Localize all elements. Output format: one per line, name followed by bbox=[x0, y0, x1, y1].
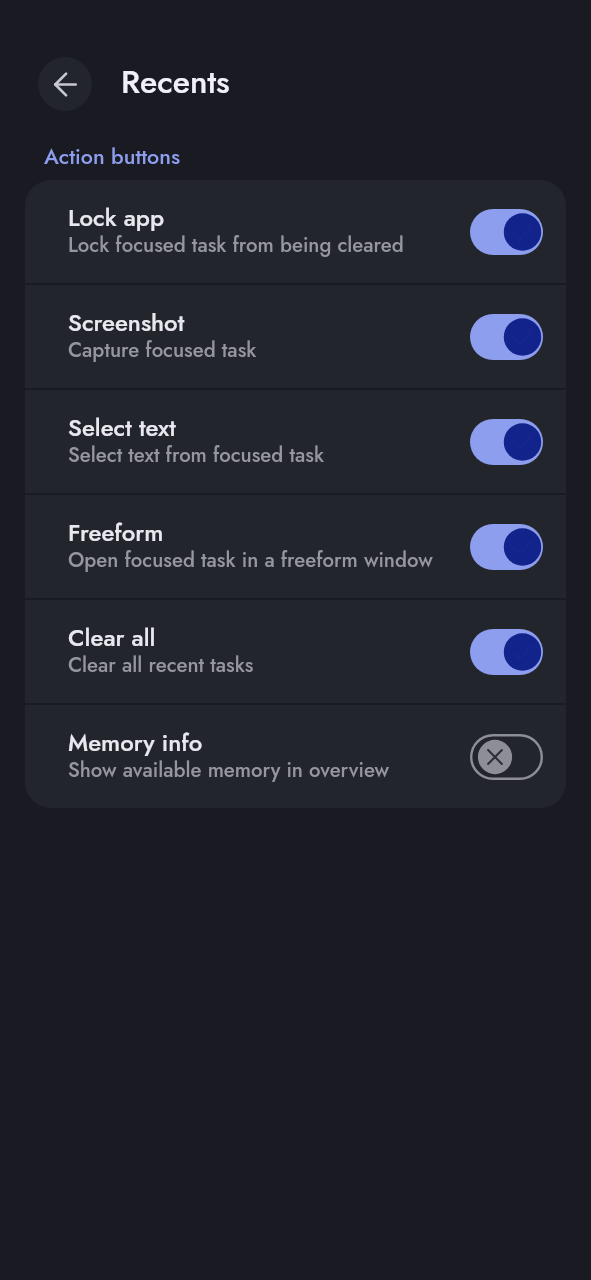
staticText: Clear all bbox=[68, 620, 156, 655]
staticText: Screenshot bbox=[68, 305, 185, 340]
staticText: Lock app bbox=[68, 200, 165, 235]
button[interactable]: Freeform bbox=[25, 495, 566, 598]
button[interactable]: Clear all bbox=[25, 600, 566, 703]
staticText: Action buttons bbox=[44, 141, 181, 172]
button[interactable]: Enabled toggle bbox=[470, 314, 543, 360]
button[interactable]: Disabled toggle bbox=[470, 734, 543, 780]
staticText: Memory info bbox=[68, 725, 203, 760]
button[interactable]: Enabled toggle bbox=[470, 524, 543, 570]
button[interactable]: Screenshot bbox=[25, 285, 566, 388]
staticText: Open focused task in a freeform window bbox=[68, 545, 433, 574]
button[interactable]: Memory info bbox=[25, 705, 566, 808]
staticText: Clear all recent tasks bbox=[68, 650, 254, 679]
staticText: Select text bbox=[68, 410, 176, 445]
staticText: Select text from focused task bbox=[68, 440, 325, 469]
staticText: Show available memory in overview bbox=[68, 755, 390, 784]
button[interactable]: Lock app bbox=[25, 180, 566, 283]
button[interactable]: Enabled toggle bbox=[470, 209, 543, 255]
button[interactable]: Select text bbox=[25, 390, 566, 493]
button[interactable]: Enabled toggle bbox=[470, 419, 543, 465]
button[interactable]: Enabled toggle bbox=[470, 629, 543, 675]
button[interactable]: Back bbox=[38, 57, 92, 111]
staticText: Freeform bbox=[68, 515, 164, 550]
staticText: Recents bbox=[121, 59, 230, 105]
staticText: Lock focused task from being cleared bbox=[68, 230, 404, 259]
staticText: Capture focused task bbox=[68, 335, 257, 364]
